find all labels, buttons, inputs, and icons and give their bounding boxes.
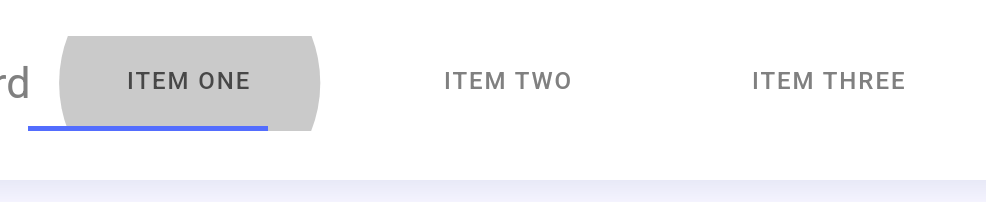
button[interactable]: ITEM THREE <box>669 36 986 131</box>
staticText: ITEM THREE <box>752 67 907 95</box>
staticText: ITEM TWO <box>444 67 574 95</box>
button[interactable]: ITEM ONE <box>29 36 349 131</box>
staticText: rd <box>0 58 31 108</box>
button[interactable]: ITEM TWO <box>349 36 669 131</box>
staticText: ITEM ONE <box>127 67 252 95</box>
